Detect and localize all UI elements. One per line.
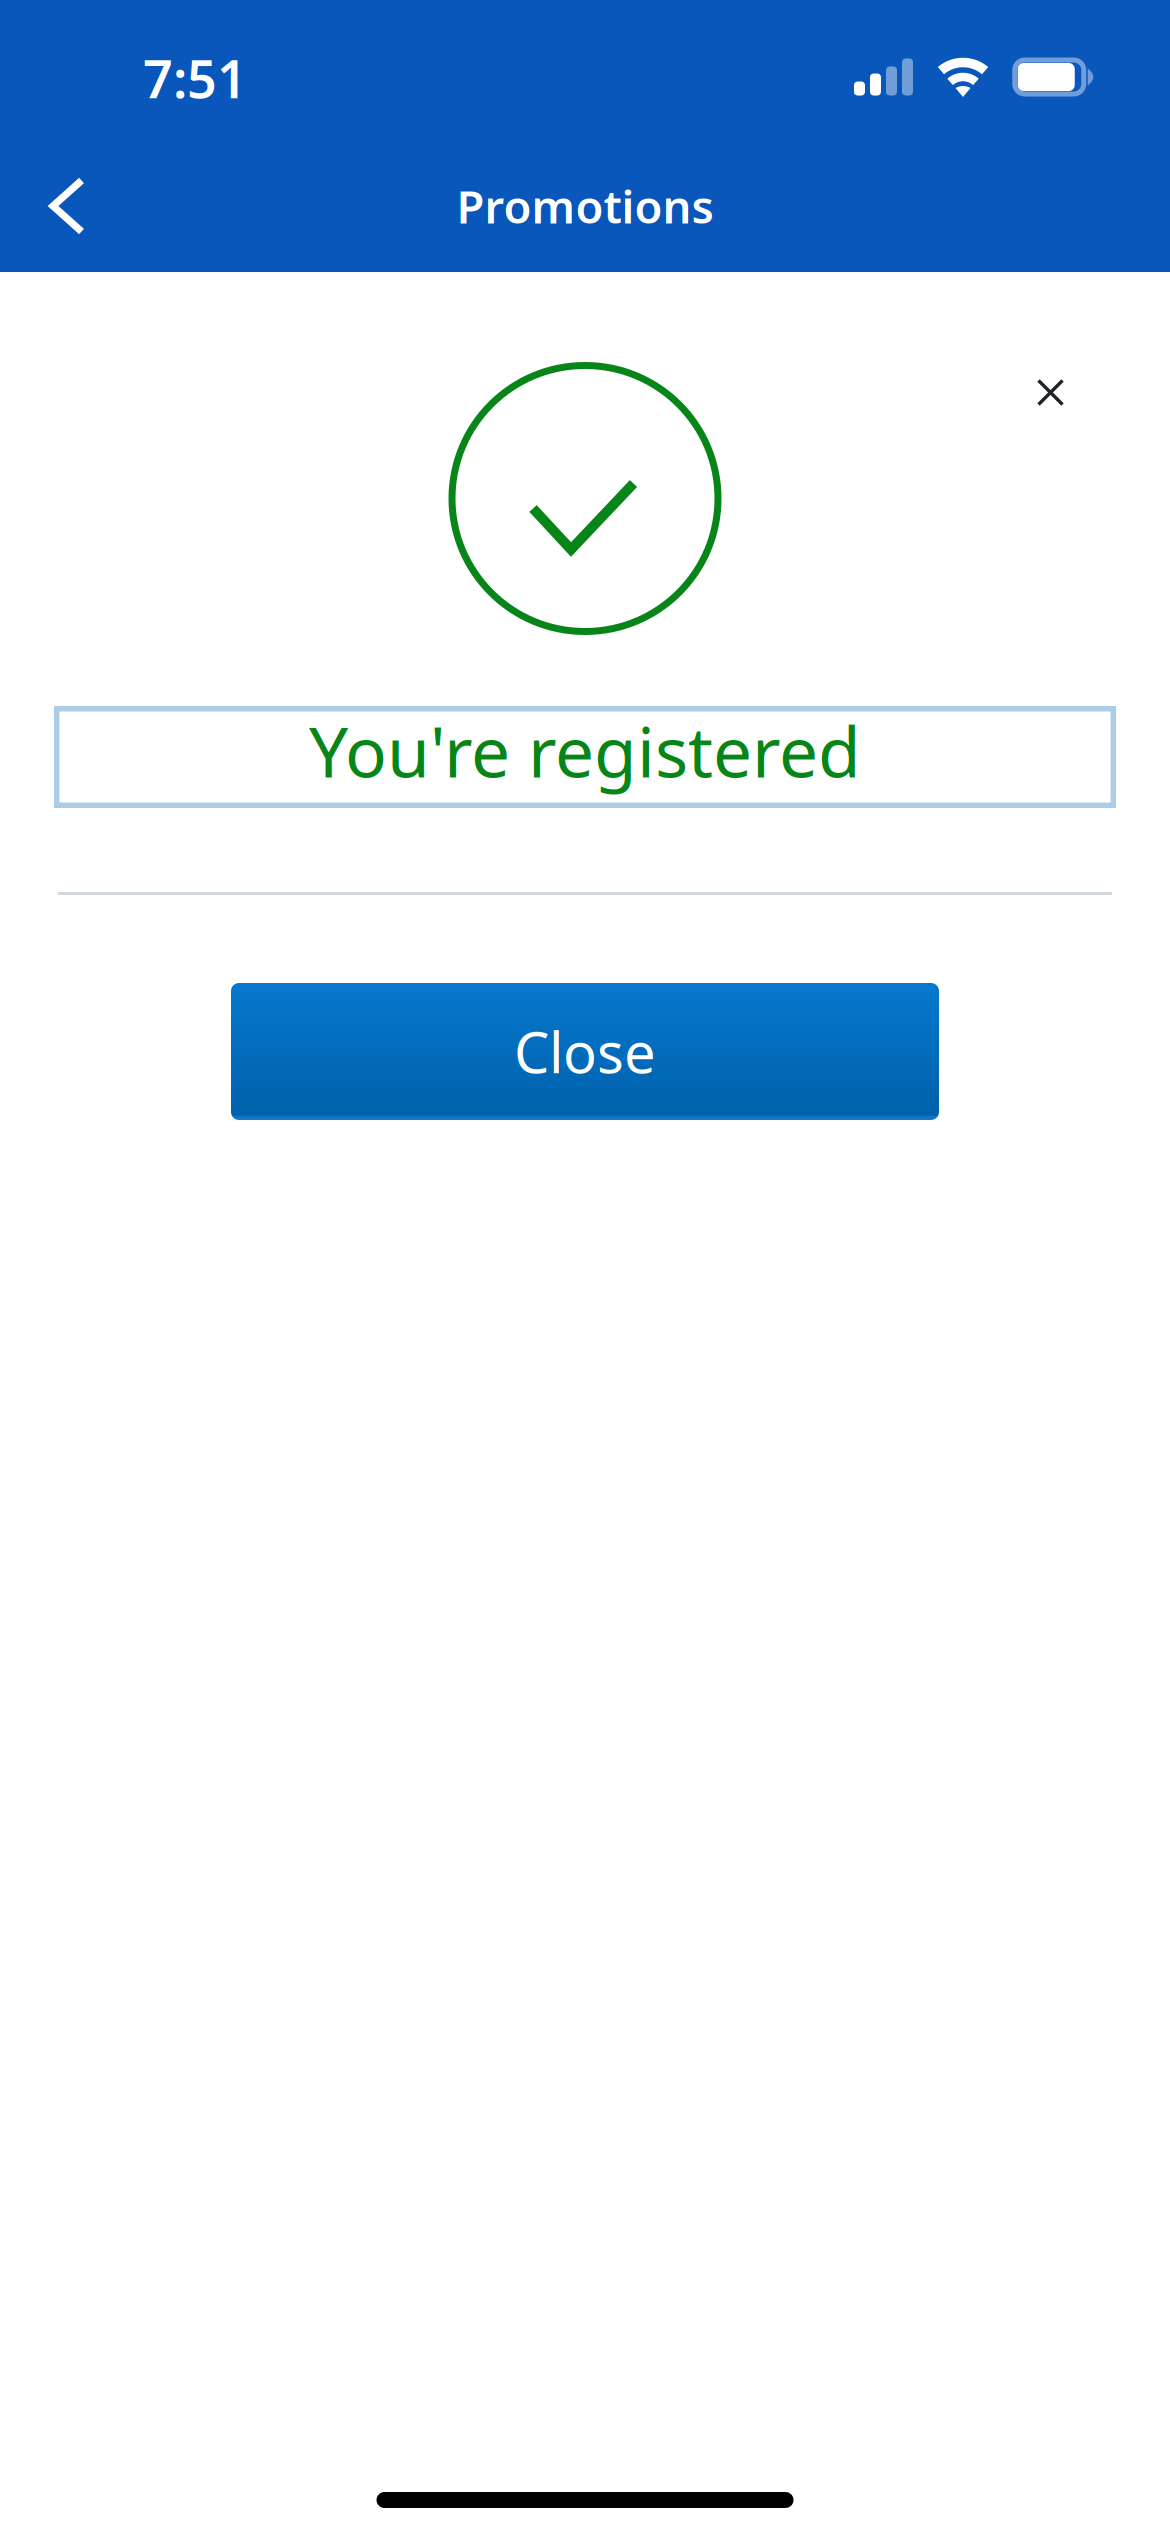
button[interactable]: Back	[0, 151, 122, 260]
staticText: You're registered	[309, 704, 861, 797]
button[interactable]: Close	[231, 983, 939, 1120]
staticText: Close	[514, 1014, 656, 1089]
button[interactable]: Close	[1014, 356, 1087, 429]
staticText: 7:51	[143, 43, 247, 113]
staticText: Promotions	[456, 176, 713, 236]
